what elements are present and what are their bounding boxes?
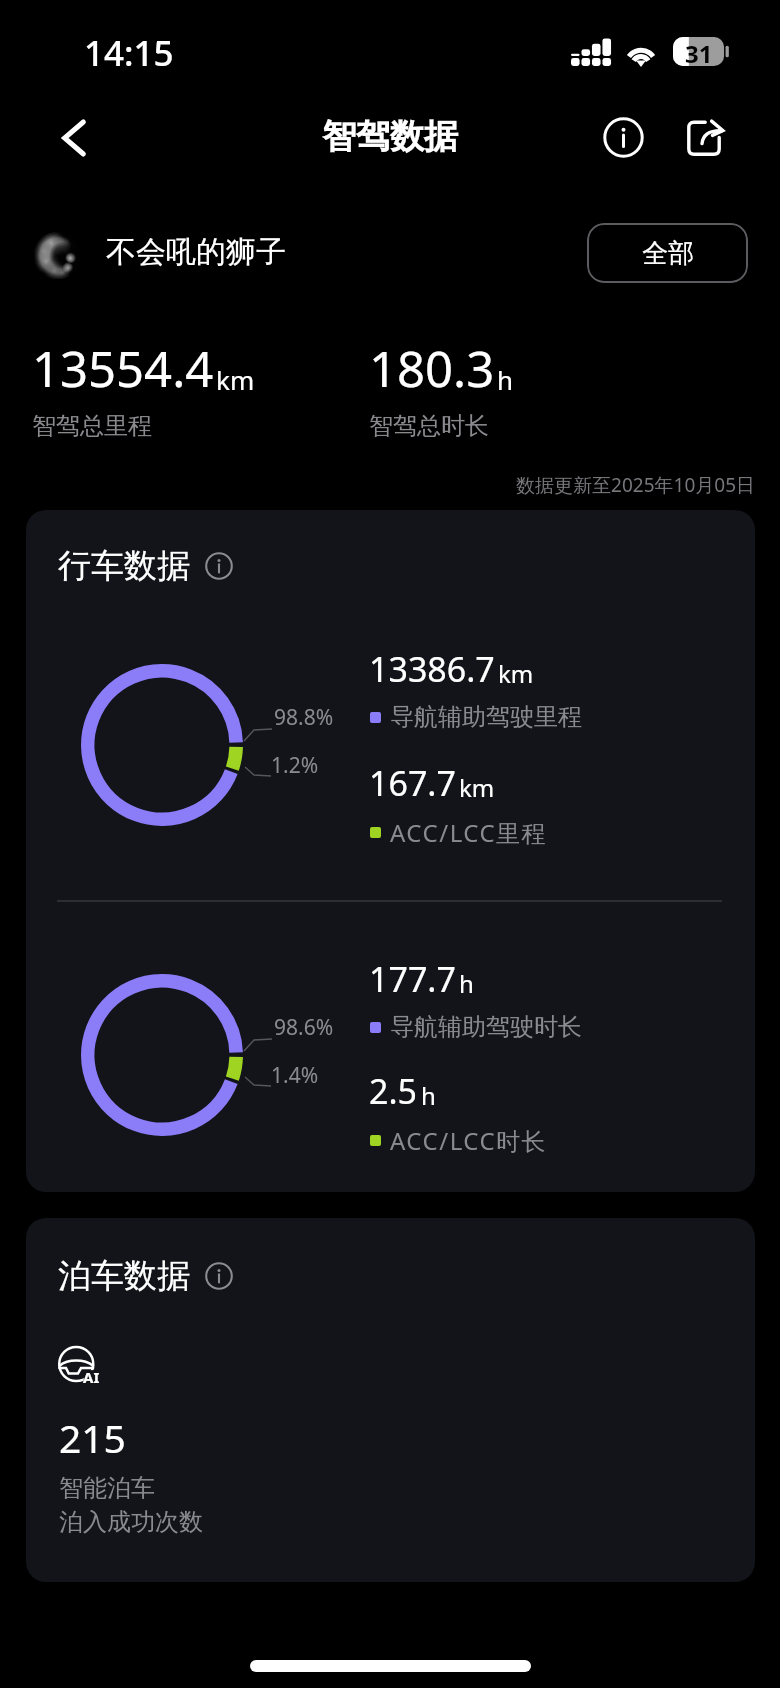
staticText: 167.7	[369, 760, 456, 806]
staticText: 2.5	[369, 1068, 418, 1114]
staticText: 智驾数据	[322, 115, 458, 158]
staticText: 不会吼的狮子	[106, 233, 286, 271]
staticText: km	[459, 771, 495, 804]
staticText: 智驾总里程	[32, 411, 152, 441]
staticText: h	[421, 1079, 436, 1112]
staticText: 1.4%	[271, 1061, 319, 1090]
staticText: 98.6%	[274, 1013, 334, 1042]
staticText: 行车数据	[58, 545, 190, 587]
staticText: km	[498, 657, 534, 690]
staticText: h	[497, 362, 514, 397]
staticText: 177.7	[369, 956, 456, 1002]
staticText: 180.3	[369, 335, 495, 402]
staticText: 数据更新至2025年10月05日	[516, 472, 755, 498]
button[interactable]: About 行车数据	[202, 549, 236, 583]
button[interactable]: About 泊车数据	[202, 1259, 236, 1293]
staticText: 98.8%	[274, 703, 334, 732]
staticText: 13386.7	[369, 646, 495, 692]
staticText: 泊入成功次数	[59, 1507, 203, 1537]
staticText: 14:15	[84, 29, 174, 77]
staticText: 智能泊车	[59, 1473, 155, 1503]
staticText: ACC/LCC里程	[390, 816, 548, 849]
staticText: 1.2%	[271, 751, 319, 780]
staticText: AI	[83, 1367, 100, 1387]
staticText: 导航辅助驾驶里程	[390, 702, 582, 732]
staticText: 导航辅助驾驶时长	[390, 1012, 582, 1042]
staticText: 215	[59, 1411, 126, 1464]
staticText: 泊车数据	[58, 1255, 190, 1297]
staticText: 31	[685, 37, 713, 66]
staticText: h	[459, 967, 474, 1000]
staticText: km	[216, 362, 255, 397]
button[interactable]: Info	[591, 105, 655, 169]
button[interactable]: 全部	[587, 223, 748, 283]
staticText: 智驾总时长	[369, 411, 489, 441]
staticText: 13554.4	[32, 335, 214, 402]
button[interactable]: Share	[671, 105, 737, 171]
staticText: ACC/LCC时长	[390, 1124, 548, 1157]
staticText: 全部	[642, 237, 694, 270]
button[interactable]: Back	[42, 106, 106, 170]
